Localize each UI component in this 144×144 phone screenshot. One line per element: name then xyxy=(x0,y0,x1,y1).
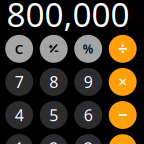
staticText: 8 xyxy=(49,71,58,92)
button[interactable]: Plus minus xyxy=(40,35,68,63)
button[interactable]: Multiply xyxy=(109,68,137,96)
staticText: 1 xyxy=(15,137,24,144)
staticText: 800,000 xyxy=(6,0,129,36)
button[interactable]: 1 xyxy=(5,134,33,144)
staticText: 5 xyxy=(49,104,58,126)
staticText: % xyxy=(83,41,94,57)
button[interactable]: Subtract xyxy=(109,101,137,129)
button[interactable]: Add xyxy=(109,134,137,144)
staticText: 4 xyxy=(15,104,24,126)
staticText: 9 xyxy=(84,71,93,92)
button[interactable]: 3 xyxy=(74,134,102,144)
button[interactable]: 9 xyxy=(74,68,102,96)
staticText: 2 xyxy=(49,137,58,144)
staticText: 3 xyxy=(84,137,93,144)
button[interactable]: Divide xyxy=(109,35,137,63)
button[interactable]: Clear xyxy=(5,35,33,63)
button[interactable]: 6 xyxy=(74,101,102,129)
staticText: 7 xyxy=(15,71,24,92)
staticText: C xyxy=(15,40,24,58)
button[interactable]: 8 xyxy=(40,68,68,96)
staticText: 6 xyxy=(84,104,93,126)
button[interactable]: 5 xyxy=(40,101,68,129)
button[interactable]: 2 xyxy=(40,134,68,144)
button[interactable]: 7 xyxy=(5,68,33,96)
button[interactable]: Percent xyxy=(74,35,102,63)
button[interactable]: 4 xyxy=(5,101,33,129)
